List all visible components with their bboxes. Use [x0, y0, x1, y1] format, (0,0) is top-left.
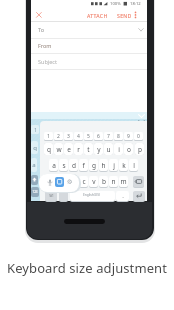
staticText: 123 — [32, 190, 38, 194]
button[interactable]: y — [94, 143, 103, 155]
staticText: d — [72, 161, 76, 170]
staticText: q — [33, 144, 37, 152]
button[interactable]: a — [49, 159, 58, 171]
staticText: 7 — [107, 133, 110, 140]
staticText: English(US) — [83, 193, 100, 197]
staticText: 8 — [117, 133, 120, 140]
staticText: To — [38, 26, 45, 33]
staticText: y — [97, 145, 101, 154]
button[interactable] — [55, 177, 64, 187]
staticText: a — [32, 161, 36, 169]
button[interactable]: 8 — [114, 132, 123, 140]
staticText: p — [138, 145, 142, 154]
button[interactable]: b — [99, 176, 108, 187]
staticText: From — [38, 42, 52, 49]
staticText: z — [62, 177, 66, 186]
button[interactable]: u — [104, 143, 113, 155]
button[interactable]: t — [84, 143, 93, 155]
button[interactable]: 2 — [54, 132, 63, 140]
button[interactable]: r — [74, 143, 83, 155]
button[interactable]: 5 — [84, 132, 93, 140]
button[interactable]: l — [129, 159, 138, 171]
button[interactable] — [133, 176, 144, 187]
button[interactable]: f — [79, 159, 88, 171]
staticText: v — [92, 177, 96, 186]
button[interactable]: 9 — [124, 132, 133, 140]
staticText: s — [62, 161, 66, 170]
staticText: r — [77, 145, 80, 154]
button[interactable] — [67, 179, 72, 184]
button[interactable]: i — [114, 143, 123, 155]
button[interactable] — [31, 175, 38, 185]
button[interactable]: 123 — [31, 187, 39, 197]
button[interactable]: 0 — [134, 132, 143, 140]
staticText: 4 — [77, 133, 80, 140]
button[interactable]: ATTACH — [85, 11, 106, 18]
button[interactable]: 4 — [74, 132, 83, 140]
staticText: 5 — [87, 133, 90, 140]
button[interactable] — [47, 179, 53, 187]
staticText: k — [122, 161, 126, 170]
button[interactable]: s — [59, 159, 68, 171]
button[interactable]: h — [99, 159, 108, 171]
staticText: g — [92, 161, 96, 170]
staticText: !#1 — [49, 194, 54, 198]
staticText: c — [82, 177, 86, 186]
staticText: 9 — [127, 133, 130, 140]
button[interactable]: 3 — [64, 132, 73, 140]
button[interactable]: 7 — [104, 132, 113, 140]
button[interactable]: k — [119, 159, 128, 171]
staticText: l — [133, 161, 135, 170]
button[interactable]: a — [31, 158, 37, 172]
staticText: 1 — [47, 133, 50, 140]
staticText: t — [87, 145, 90, 154]
staticText: 3 — [67, 133, 70, 140]
staticText: w — [56, 145, 62, 154]
staticText: j — [113, 161, 115, 170]
button[interactable]: z — [59, 176, 68, 187]
button[interactable]: j — [109, 159, 118, 171]
staticText: 1 — [34, 127, 37, 133]
staticText: m — [120, 177, 127, 186]
button[interactable] — [36, 12, 42, 18]
button[interactable]: v — [89, 176, 98, 187]
button[interactable]: SEND — [115, 11, 130, 18]
button[interactable]: . — [116, 191, 129, 201]
staticText: n — [111, 177, 116, 186]
button[interactable]: n — [109, 176, 118, 187]
button[interactable]: p — [135, 143, 144, 155]
staticText: e — [67, 145, 71, 154]
button[interactable]: 1 — [31, 125, 39, 134]
button[interactable] — [134, 11, 137, 19]
button[interactable]: e — [64, 143, 73, 155]
staticText: Keyboard size adjustment — [7, 259, 167, 277]
button[interactable]: q — [44, 143, 53, 155]
button[interactable]: o — [124, 143, 133, 155]
button[interactable]: 6 — [94, 132, 103, 140]
button[interactable]: x — [69, 176, 78, 187]
staticText: 0 — [137, 133, 140, 140]
button[interactable] — [59, 191, 68, 201]
staticText: u — [106, 145, 111, 154]
staticText: 100% — [110, 1, 121, 7]
button[interactable]: q — [31, 141, 38, 154]
staticText: 18:12 — [130, 1, 141, 7]
button[interactable]: d — [69, 159, 78, 171]
staticText: o — [127, 145, 131, 154]
button[interactable] — [133, 191, 145, 201]
button[interactable]: g — [89, 159, 98, 171]
staticText: h — [101, 161, 106, 170]
staticText: 6 — [97, 133, 100, 140]
button[interactable]: m — [119, 176, 128, 187]
button[interactable]: !#1 — [45, 191, 57, 201]
button[interactable]: c — [79, 176, 88, 187]
staticText: b — [102, 177, 106, 186]
button[interactable] — [45, 176, 57, 187]
button[interactable] — [70, 191, 115, 201]
staticText: q — [47, 145, 51, 154]
button[interactable]: 1 — [44, 132, 53, 140]
button[interactable]: w — [54, 143, 63, 155]
staticText: i — [118, 145, 120, 154]
staticText: SEND — [117, 12, 132, 19]
